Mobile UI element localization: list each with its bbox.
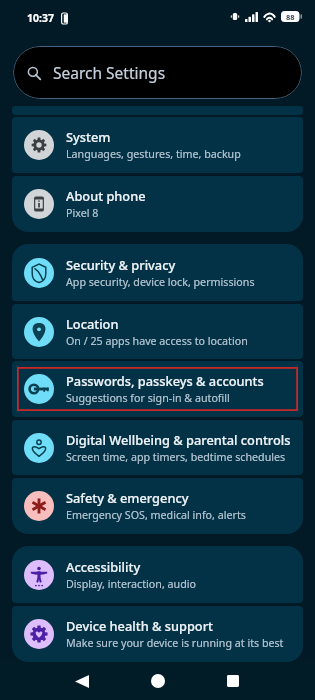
- button[interactable]: Home: [142, 665, 174, 697]
- staticText: System: [66, 128, 111, 145]
- staticText: About phone: [66, 187, 146, 204]
- staticText: Languages, gestures, time, backup: [66, 147, 241, 162]
- staticText: Suggestions for sign-in & autofill: [66, 391, 230, 406]
- button[interactable]: Location: [12, 304, 303, 359]
- staticText: Safety & emergency: [66, 489, 189, 506]
- staticText: Make sure your device is running at its …: [66, 636, 284, 651]
- button[interactable]: System: [12, 117, 303, 173]
- button[interactable]: Passwords, passkeys & accounts: [12, 361, 303, 417]
- staticText: App security, device lock, permissions: [66, 275, 255, 290]
- staticText: On / 25 apps have access to location: [66, 334, 248, 349]
- staticText: Passwords, passkeys & accounts: [66, 372, 264, 389]
- staticText: 88: [286, 12, 295, 22]
- staticText: Security & privacy: [66, 256, 176, 273]
- button[interactable]: Safety & emergency: [12, 478, 303, 534]
- button[interactable]: Back: [66, 665, 98, 697]
- button[interactable]: Device health & support: [12, 606, 303, 662]
- button[interactable]: Digital Wellbeing & parental controls: [12, 420, 303, 475]
- staticText: Location: [66, 315, 119, 332]
- staticText: Display, interaction, audio: [66, 577, 196, 592]
- staticText: Accessibility: [66, 558, 141, 575]
- staticText: Device health & support: [66, 617, 213, 634]
- staticText: Digital Wellbeing & parental controls: [66, 431, 291, 448]
- button[interactable]: Accessibility: [12, 546, 303, 603]
- button[interactable]: Security & privacy: [12, 244, 303, 301]
- button[interactable]: Recent apps: [217, 665, 249, 697]
- staticText: 10:37: [27, 11, 54, 25]
- button[interactable]: Search Settings: [13, 46, 302, 99]
- staticText: Emergency SOS, medical info, alerts: [66, 508, 246, 523]
- button[interactable]: About phone: [12, 176, 303, 232]
- staticText: Screen time, app timers, bedtime schedul…: [66, 450, 286, 465]
- staticText: Search Settings: [53, 62, 166, 83]
- staticText: Pixel 8: [66, 206, 99, 221]
